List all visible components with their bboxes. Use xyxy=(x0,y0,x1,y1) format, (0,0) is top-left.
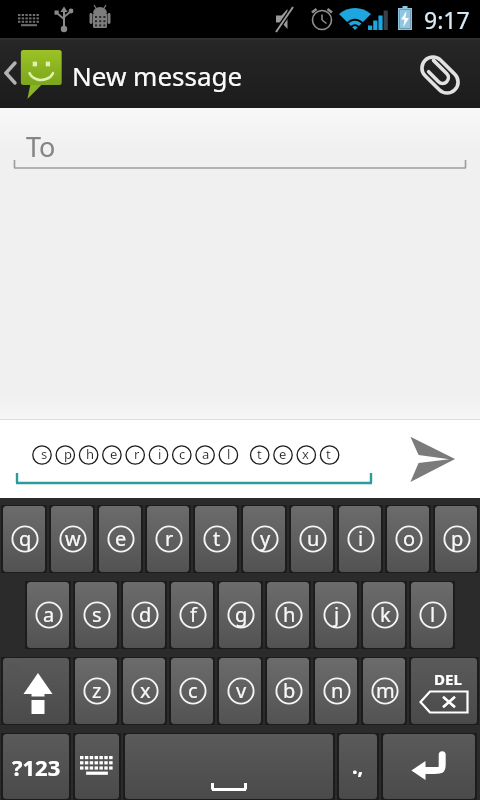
button[interactable]: z xyxy=(75,658,117,724)
staticText: t xyxy=(257,445,262,463)
staticText: x xyxy=(140,677,151,704)
staticText: l xyxy=(227,445,231,463)
button[interactable]: q xyxy=(3,506,45,572)
button[interactable]: r xyxy=(147,506,189,572)
button[interactable]: ., xyxy=(339,734,377,799)
staticText: 9:17 xyxy=(424,4,470,35)
staticText: c xyxy=(188,677,198,704)
button[interactable]: v xyxy=(219,658,261,724)
staticText: c xyxy=(179,445,186,463)
staticText: ?123 xyxy=(12,752,61,782)
staticText: a xyxy=(43,601,55,628)
button[interactable]: b xyxy=(267,658,309,724)
staticText: New message xyxy=(72,58,243,93)
button[interactable]: Switch keyboard xyxy=(75,734,119,799)
button[interactable]: l xyxy=(411,582,453,648)
button[interactable]: w xyxy=(51,506,93,572)
button[interactable]: Shift xyxy=(3,658,69,724)
staticText: t xyxy=(213,525,221,552)
button[interactable]: a xyxy=(27,582,69,648)
button[interactable]: u xyxy=(291,506,333,572)
button[interactable]: i xyxy=(339,506,381,572)
staticText: r xyxy=(134,445,140,463)
staticText: z xyxy=(92,677,102,704)
staticText: s xyxy=(41,445,48,463)
button[interactable]: Space xyxy=(125,734,333,799)
staticText: f xyxy=(190,601,197,628)
staticText: To xyxy=(26,128,56,165)
staticText: n xyxy=(331,677,344,704)
staticText: u xyxy=(307,525,320,552)
button[interactable]: To xyxy=(0,110,480,174)
staticText: b xyxy=(283,677,296,704)
button[interactable]: m xyxy=(363,658,405,724)
button[interactable]: y xyxy=(243,506,285,572)
button[interactable]: Delete xyxy=(411,658,477,724)
staticText: g xyxy=(235,601,248,628)
button[interactable]: t xyxy=(195,506,237,572)
staticText: r xyxy=(165,525,174,552)
button[interactable]: n xyxy=(315,658,357,724)
staticText: o xyxy=(403,525,416,552)
staticText: l xyxy=(430,601,436,628)
button[interactable]: h xyxy=(267,582,309,648)
button[interactable]: Enter xyxy=(383,734,475,799)
button[interactable]: f xyxy=(171,582,213,648)
button[interactable]: p xyxy=(435,506,477,572)
button[interactable]: Navigate up xyxy=(0,38,70,108)
staticText: q xyxy=(19,525,32,552)
button[interactable]: s xyxy=(75,582,117,648)
staticText: p xyxy=(64,445,72,463)
staticText: k xyxy=(380,601,391,628)
button[interactable]: e xyxy=(99,506,141,572)
staticText: i xyxy=(158,445,162,463)
staticText: m xyxy=(376,677,395,704)
button[interactable]: ?123 xyxy=(3,734,69,799)
staticText: s xyxy=(92,601,102,628)
staticText: ., xyxy=(352,753,364,780)
staticText: d xyxy=(139,601,152,628)
staticText: p xyxy=(451,525,464,552)
staticText: j xyxy=(334,601,340,628)
button[interactable]: d xyxy=(123,582,165,648)
staticText: w xyxy=(65,525,81,552)
staticText: y xyxy=(260,525,271,552)
staticText: i xyxy=(358,525,364,552)
button[interactable]: c xyxy=(171,658,213,724)
staticText: a xyxy=(202,445,210,463)
button[interactable]: g xyxy=(219,582,261,648)
button[interactable]: x xyxy=(123,658,165,724)
staticText: e xyxy=(279,445,287,463)
button[interactable]: k xyxy=(363,582,405,648)
staticText: x xyxy=(302,445,309,463)
staticText: e xyxy=(115,525,127,552)
staticText: h xyxy=(283,601,296,628)
staticText: v xyxy=(236,677,247,704)
staticText: h xyxy=(86,445,95,463)
button[interactable]: Attach xyxy=(404,38,480,108)
staticText: DEL xyxy=(434,669,462,689)
button[interactable]: j xyxy=(315,582,357,648)
staticText: e xyxy=(110,445,118,463)
staticText: t xyxy=(326,445,331,463)
button[interactable]: Send xyxy=(386,420,478,498)
button[interactable]: s xyxy=(0,420,480,498)
button[interactable]: o xyxy=(387,506,429,572)
